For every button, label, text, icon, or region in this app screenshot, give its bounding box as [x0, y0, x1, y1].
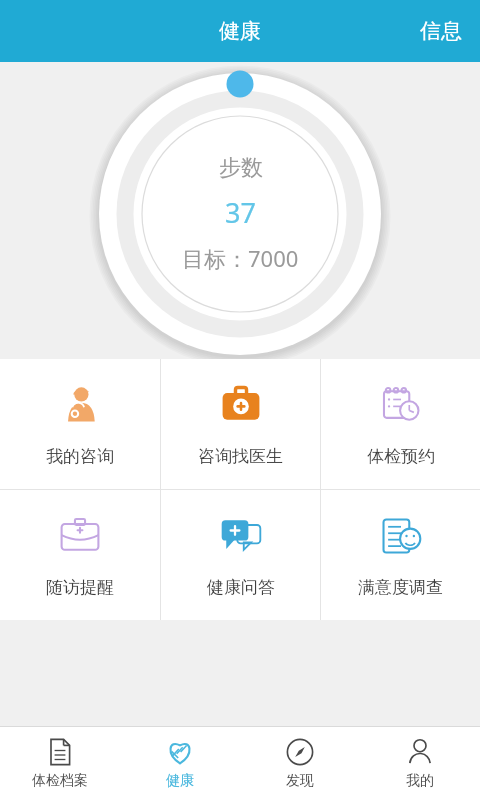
- button[interactable]: 满意度调查: [321, 490, 480, 620]
- button[interactable]: 体检档案: [0, 727, 120, 800]
- button[interactable]: 健康: [120, 727, 240, 800]
- staticText: 健康问答: [207, 577, 275, 598]
- staticText: 信息: [420, 18, 462, 44]
- staticText: 步数: [219, 154, 263, 182]
- button[interactable]: 体检预约: [321, 359, 480, 489]
- button[interactable]: 咨询找医生: [161, 359, 320, 489]
- staticText: 健康: [219, 18, 261, 44]
- staticText: 满意度调查: [358, 577, 443, 598]
- button[interactable]: 随访提醒: [0, 490, 160, 620]
- staticText: 体检档案: [32, 772, 88, 790]
- staticText: 咨询找医生: [198, 446, 283, 467]
- staticText: 健康: [166, 772, 194, 790]
- staticText: 37: [225, 194, 256, 231]
- button[interactable]: 步数: [95, 66, 385, 356]
- staticText: 发现: [286, 772, 314, 790]
- button[interactable]: 我的: [360, 727, 480, 800]
- staticText: 目标：7000: [182, 243, 299, 273]
- button[interactable]: 我的咨询: [0, 359, 160, 489]
- button[interactable]: 健康问答: [161, 490, 320, 620]
- button[interactable]: 发现: [240, 727, 360, 800]
- button[interactable]: 信息: [402, 6, 480, 56]
- staticText: 随访提醒: [46, 577, 114, 598]
- staticText: 体检预约: [367, 446, 435, 467]
- staticText: 我的咨询: [46, 446, 114, 467]
- staticText: 我的: [406, 772, 434, 790]
